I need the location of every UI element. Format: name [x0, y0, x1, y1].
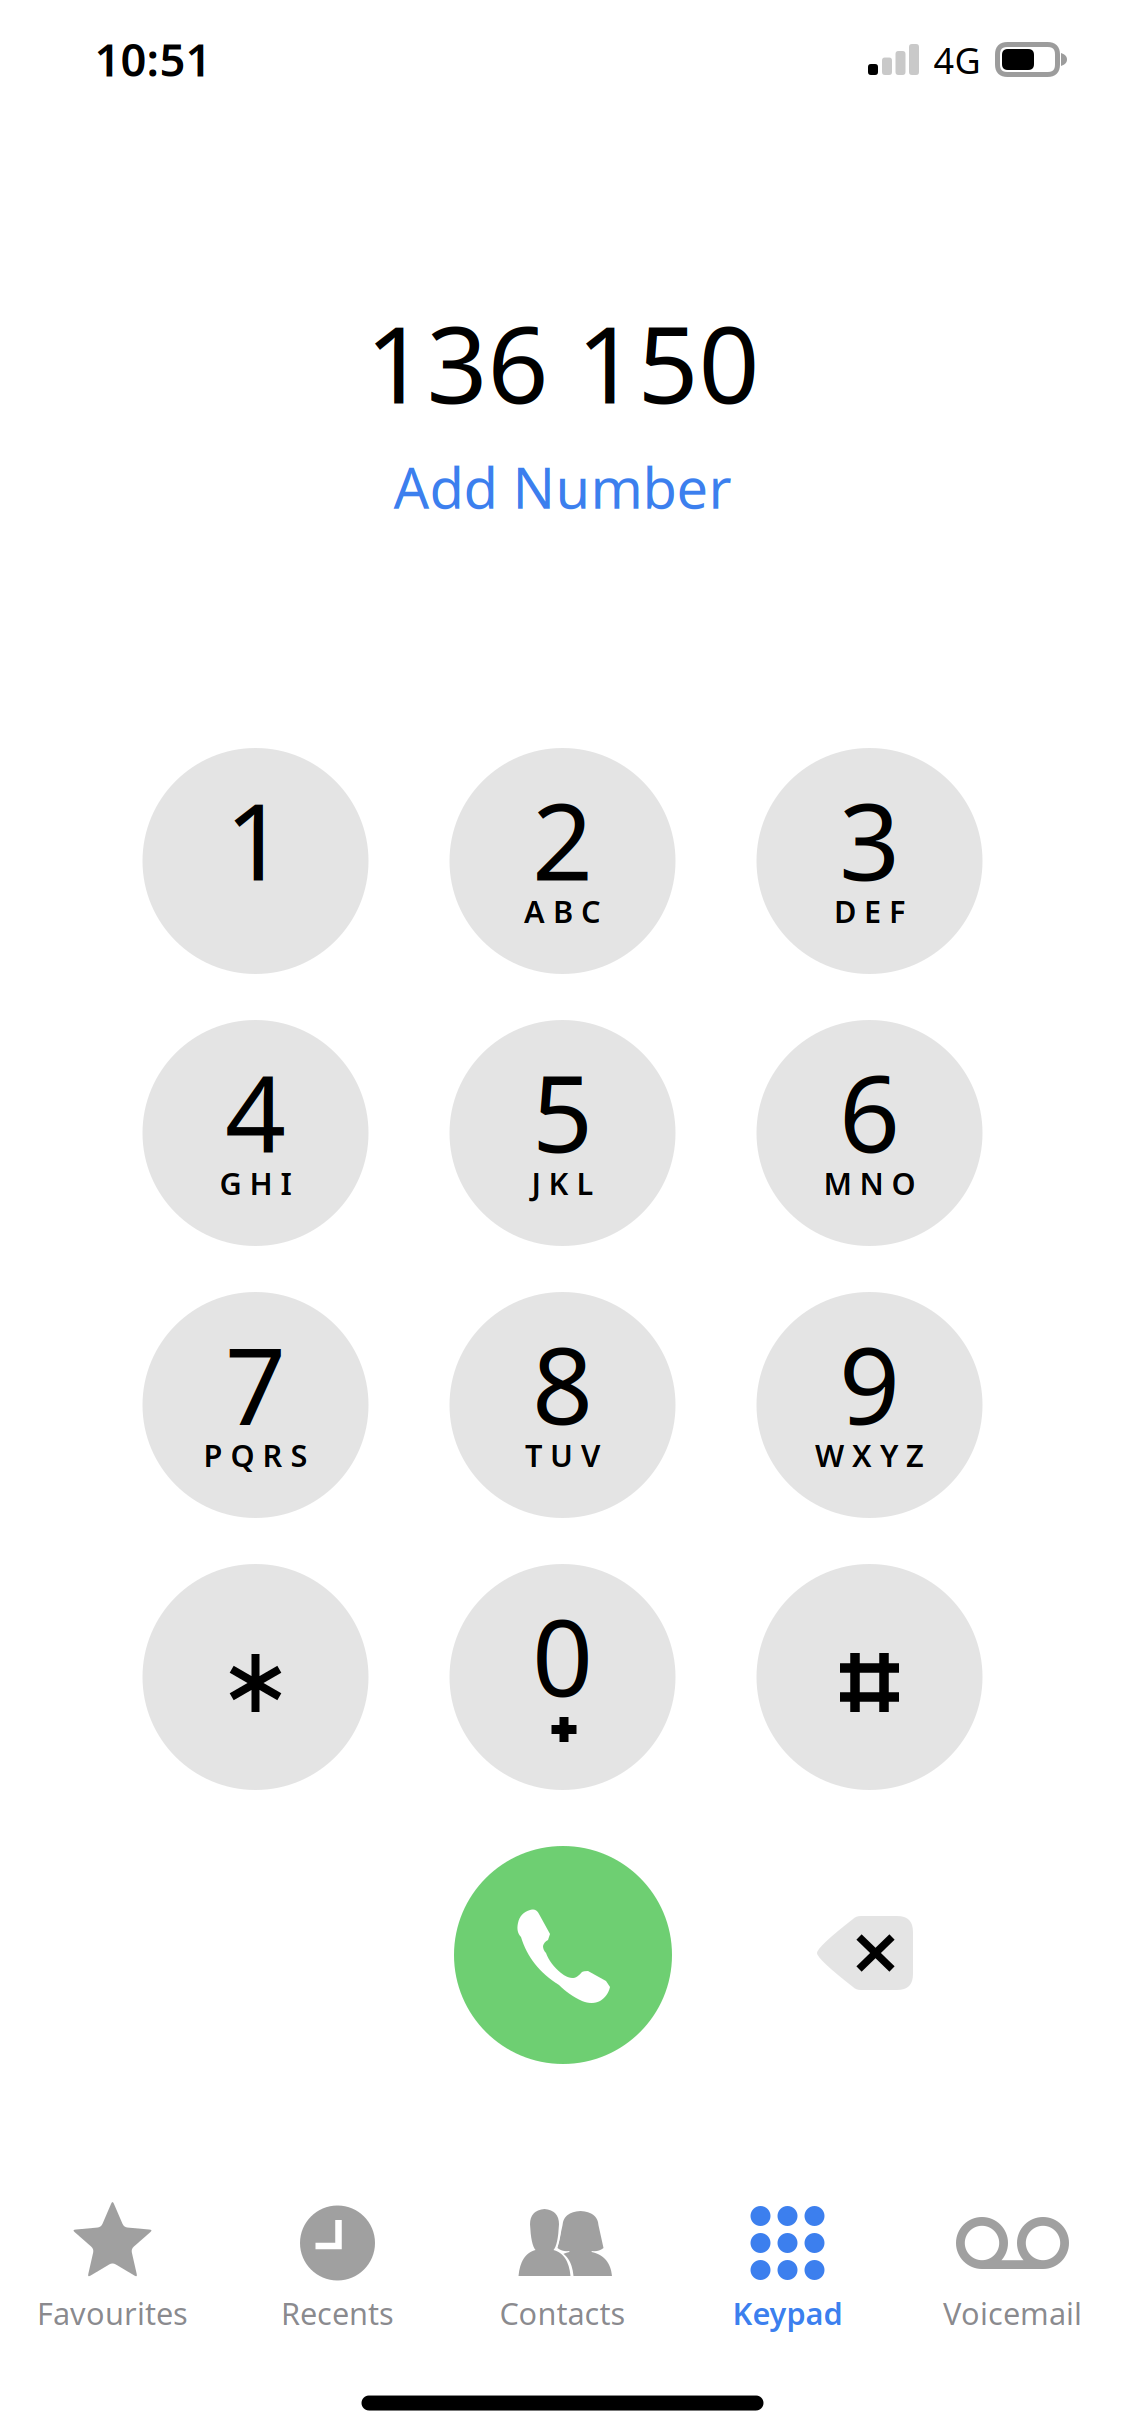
- staticText: J K L: [531, 1163, 593, 1203]
- button[interactable]: Contacts: [450, 2195, 675, 2335]
- staticText: Favourites: [37, 2293, 188, 2333]
- button[interactable]: Delete: [815, 1916, 913, 1990]
- staticText: 1: [225, 768, 286, 910]
- staticText: W X Y Z: [815, 1435, 924, 1475]
- staticText: G H I: [219, 1163, 291, 1203]
- staticText: D E F: [834, 891, 905, 931]
- staticText: Recents: [281, 2293, 394, 2333]
- button[interactable]: Keypad: [675, 2195, 900, 2335]
- staticText: 3: [839, 768, 900, 910]
- staticText: 4: [225, 1040, 286, 1182]
- button[interactable]: 4: [142, 1020, 368, 1246]
- button[interactable]: 8: [449, 1292, 675, 1518]
- button[interactable]: 3: [756, 748, 982, 974]
- staticText: T U V: [525, 1435, 600, 1475]
- button[interactable]: Call: [454, 1846, 672, 2064]
- button[interactable]: 5: [449, 1020, 675, 1246]
- staticText: Contacts: [499, 2293, 625, 2333]
- button[interactable]: Recents: [225, 2195, 450, 2335]
- staticText: Voicemail: [943, 2293, 1082, 2333]
- staticText: Add Number: [393, 450, 731, 524]
- button[interactable]: Favourites: [0, 2195, 225, 2335]
- button[interactable]: Add Number: [352, 449, 772, 525]
- staticText: A B C: [524, 891, 601, 931]
- button[interactable]: 2: [449, 748, 675, 974]
- staticText: 10:51: [94, 29, 211, 89]
- staticText: Keypad: [732, 2293, 842, 2333]
- button[interactable]: Star: [142, 1564, 368, 1790]
- staticText: M N O: [823, 1163, 915, 1203]
- button[interactable]: Hash: [756, 1564, 982, 1790]
- staticText: 7: [225, 1312, 286, 1454]
- button[interactable]: 6: [756, 1020, 982, 1246]
- staticText: 2: [532, 768, 593, 910]
- staticText: 9: [839, 1312, 900, 1454]
- staticText: 5: [532, 1040, 593, 1182]
- button[interactable]: 1: [142, 748, 368, 974]
- button[interactable]: 0: [449, 1564, 675, 1790]
- button[interactable]: Voicemail: [900, 2195, 1125, 2335]
- staticText: P Q R S: [203, 1435, 307, 1475]
- staticText: 0: [532, 1584, 593, 1726]
- staticText: 6: [839, 1040, 900, 1182]
- staticText: 8: [532, 1312, 593, 1454]
- staticText: 136 150: [365, 291, 759, 433]
- button[interactable]: 7: [142, 1292, 368, 1518]
- button[interactable]: 9: [756, 1292, 982, 1518]
- staticText: 4G: [933, 36, 980, 84]
